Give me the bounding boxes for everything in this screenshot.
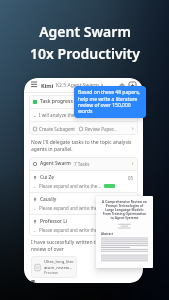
- staticText: Review Paper...: [85, 126, 117, 132]
- staticText: I have successfully written the literatu…: [31, 239, 136, 253]
- button[interactable]: Agent Swarm: [29, 157, 138, 236]
- staticText: 05: [128, 175, 134, 181]
- button[interactable]: Professor Li: [29, 215, 138, 236]
- button[interactable]: Menu: [30, 81, 38, 89]
- staticText: Now I'll delegate tasks to the topic ana…: [31, 139, 136, 153]
- staticText: Please expand and write the...: [39, 205, 101, 211]
- staticText: ⌄: [33, 184, 37, 188]
- staticText: A Comprehensive Review on Prompt Technol…: [101, 200, 148, 220]
- staticText: Abstract: [101, 232, 113, 236]
- staticText: I will analyze the literature: [39, 112, 96, 118]
- staticText: ›: [132, 160, 134, 167]
- button[interactable]: Cui Ze: [29, 171, 138, 192]
- staticText: ⌄: [33, 113, 37, 118]
- button[interactable]: Ultra_long_literature_review_150K: [31, 256, 77, 278]
- button[interactable]: Settings: [117, 81, 126, 90]
- staticText: Please expand and write the...: [39, 227, 101, 233]
- staticText: Ultra_long_literature_review_150K: [44, 259, 74, 270]
- staticText: ⌄: [33, 206, 37, 210]
- staticText: Cui Ze: [40, 174, 55, 181]
- button[interactable]: Based on these 48 papers, help me write …: [74, 86, 146, 118]
- staticText: Professor Li: [40, 218, 67, 225]
- staticText: K2.5 Agent Swarm: [56, 82, 99, 89]
- staticText: Preview: [44, 270, 58, 275]
- staticText: Kimi: [41, 82, 54, 89]
- staticText: 10x Productivity: [30, 44, 140, 63]
- button[interactable]: Causlly: [29, 193, 138, 214]
- button[interactable]: Task progress: [29, 95, 138, 135]
- staticText: Agent Swarm: [40, 160, 71, 167]
- staticText: Causlly: [40, 196, 57, 203]
- staticText: Based on these 48 papers, help me write …: [78, 89, 142, 115]
- staticText: Please expand and write the...: [39, 183, 101, 189]
- staticText: ⌄: [33, 228, 37, 232]
- button[interactable]: New chat: [128, 81, 137, 90]
- staticText: ›: [132, 125, 134, 132]
- staticText: Create Subagent: [39, 126, 75, 132]
- staticText: Task progress: [40, 98, 73, 105]
- staticText: Agent Swarm: [39, 22, 131, 41]
- button[interactable]: A Comprehensive Review on Prompt Technol…: [96, 196, 153, 268]
- staticText: 7 Tasks: [74, 161, 90, 167]
- staticText: 08: [128, 197, 134, 203]
